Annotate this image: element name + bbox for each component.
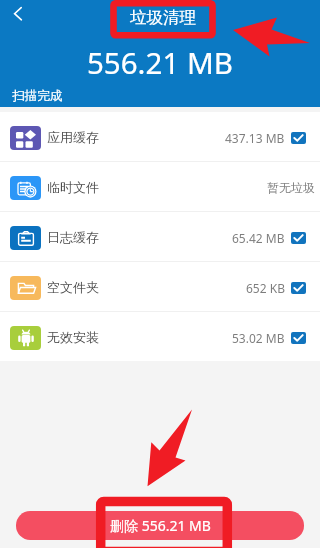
button[interactable]: 删除 556.21 MB <box>16 511 304 540</box>
staticText: 53.02 MB <box>232 330 285 346</box>
button[interactable]: 空文件夹 <box>0 262 320 311</box>
staticText: 应用缓存 <box>47 129 99 145</box>
staticText: 无效安装 <box>47 329 99 345</box>
button[interactable]: 应用缓存 <box>0 112 320 161</box>
button[interactable]: Back <box>4 0 38 34</box>
staticText: 删除 556.21 MB <box>110 516 211 535</box>
staticText: 65.42 MB <box>232 230 285 246</box>
staticText: 日志缓存 <box>47 229 99 245</box>
staticText: 652 KB <box>246 280 285 296</box>
staticText: 临时文件 <box>47 179 99 195</box>
button[interactable]: 日志缓存 <box>0 212 320 261</box>
staticText: 556.21 MB <box>87 42 233 82</box>
button[interactable]: 临时文件 <box>0 162 320 211</box>
staticText: 垃圾清理 <box>130 7 196 28</box>
staticText: 暂无垃圾 <box>267 180 315 195</box>
staticText: 扫描完成 <box>12 88 63 104</box>
staticText: 437.13 MB <box>225 130 285 146</box>
button[interactable]: 无效安装 <box>0 312 320 361</box>
staticText: 空文件夹 <box>47 279 99 295</box>
